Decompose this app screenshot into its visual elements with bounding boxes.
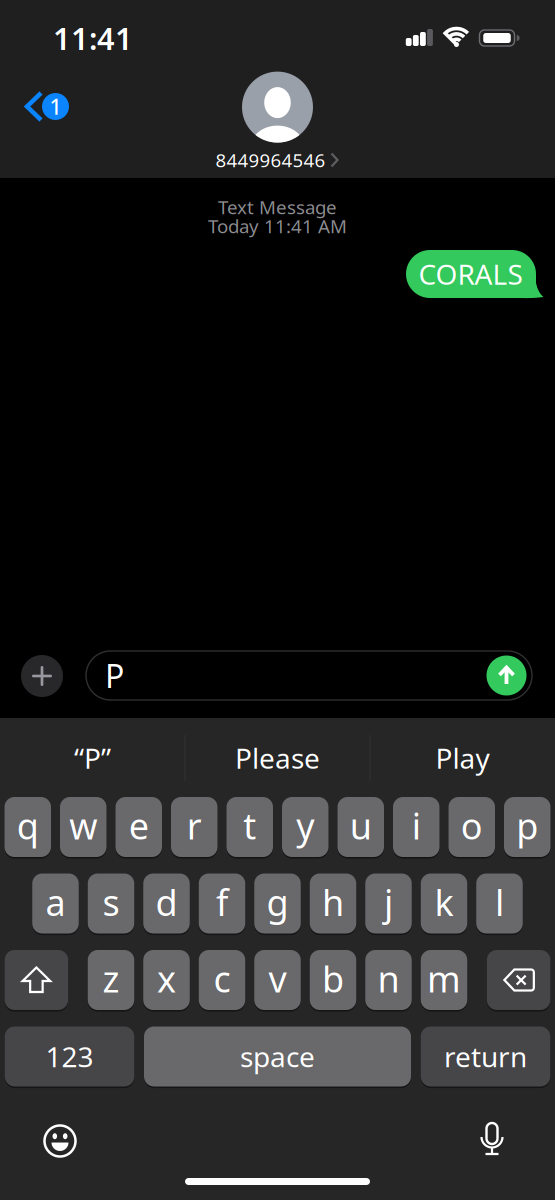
staticText: Please <box>235 739 320 777</box>
staticText: i <box>412 802 421 849</box>
button[interactable]: Please <box>186 727 369 789</box>
button[interactable]: Delete <box>487 950 550 1010</box>
button[interactable]: x <box>143 950 190 1010</box>
button[interactable]: t <box>226 797 273 857</box>
button[interactable]: b <box>310 950 356 1010</box>
button[interactable]: n <box>365 950 412 1010</box>
staticText: 11:41 <box>53 18 133 58</box>
button[interactable]: Emoji <box>42 1123 78 1159</box>
staticText: s <box>102 878 119 926</box>
button[interactable]: v <box>254 950 301 1010</box>
button[interactable]: i <box>393 797 439 857</box>
staticText: u <box>350 802 372 849</box>
button[interactable]: 123 <box>5 1026 134 1086</box>
staticText: p <box>516 802 538 849</box>
staticText: c <box>213 955 230 1002</box>
button[interactable]: g <box>254 873 301 933</box>
button[interactable]: r <box>171 797 217 857</box>
staticText: o <box>461 802 483 849</box>
staticText: “P” <box>74 739 111 777</box>
button[interactable]: space <box>144 1026 411 1086</box>
button[interactable]: Play <box>371 727 554 789</box>
staticText: t <box>243 802 256 849</box>
button[interactable]: d <box>143 873 190 933</box>
button[interactable]: k <box>421 873 467 933</box>
button[interactable]: q <box>4 797 51 857</box>
staticText: r <box>187 802 202 849</box>
staticText: return <box>444 1038 527 1075</box>
staticText: 8449964546 <box>215 148 325 172</box>
button[interactable]: Back <box>24 91 69 122</box>
staticText: Text Message <box>218 195 337 219</box>
button[interactable]: Send <box>486 655 526 695</box>
staticText: e <box>129 802 149 849</box>
staticText: space <box>240 1038 315 1075</box>
staticText: 123 <box>45 1038 93 1075</box>
button[interactable]: f <box>199 873 245 933</box>
staticText: y <box>296 802 314 849</box>
button[interactable]: a <box>32 873 79 933</box>
staticText: Today 11:41 AM <box>208 214 347 238</box>
staticText: m <box>427 955 461 1002</box>
button[interactable]: Dictation <box>474 1122 510 1158</box>
button[interactable]: Apps and attachments <box>21 655 63 697</box>
staticText: x <box>157 955 176 1002</box>
staticText: CORALS <box>418 255 522 293</box>
button[interactable]: e <box>115 797 162 857</box>
staticText: j <box>384 878 393 926</box>
staticText: l <box>495 878 504 926</box>
staticText: P <box>105 654 124 697</box>
button[interactable]: “P” <box>1 727 184 789</box>
staticText: d <box>155 878 177 926</box>
staticText: z <box>102 955 119 1002</box>
button[interactable]: y <box>282 797 328 857</box>
staticText: 1 <box>49 92 61 121</box>
staticText: g <box>266 878 288 926</box>
button[interactable]: Contact 8449964546 details <box>215 72 339 172</box>
button[interactable]: w <box>60 797 106 857</box>
staticText: a <box>45 878 65 926</box>
button[interactable]: s <box>88 873 134 933</box>
button[interactable]: u <box>337 797 384 857</box>
staticText: f <box>216 878 228 926</box>
staticText: n <box>377 955 399 1002</box>
button[interactable]: return <box>421 1026 550 1086</box>
staticText: w <box>69 802 97 849</box>
button[interactable]: z <box>88 950 134 1010</box>
button[interactable]: o <box>448 797 495 857</box>
staticText: h <box>322 878 344 926</box>
button[interactable]: m <box>421 950 467 1010</box>
button[interactable]: c <box>199 950 245 1010</box>
button[interactable]: p <box>504 797 550 857</box>
button[interactable]: Shift <box>5 950 68 1010</box>
staticText: Play <box>435 739 489 777</box>
button[interactable]: Message text field <box>86 651 532 700</box>
button[interactable]: h <box>310 873 356 933</box>
staticText: b <box>322 955 344 1002</box>
staticText: k <box>434 878 453 926</box>
staticText: q <box>17 802 39 849</box>
button[interactable]: j <box>365 873 412 933</box>
button[interactable]: l <box>476 873 523 933</box>
staticText: v <box>268 955 286 1002</box>
